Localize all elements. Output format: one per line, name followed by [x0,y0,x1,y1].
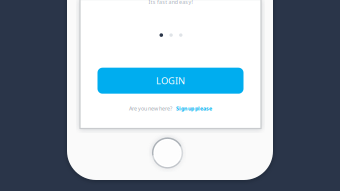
staticText: Sign up please [176,105,212,112]
button[interactable]: Page 1, current page [159,33,163,37]
staticText: Its fast and easy! [148,0,192,6]
button[interactable]: Page 3 [179,33,182,37]
button[interactable]: LOGIN [97,68,243,94]
button[interactable]: Page 2 [169,33,173,37]
button[interactable]: Sign up please [176,105,212,112]
button[interactable]: Home [147,133,187,173]
staticText: Are you new here? [129,105,172,112]
staticText: LOGIN [156,74,185,87]
